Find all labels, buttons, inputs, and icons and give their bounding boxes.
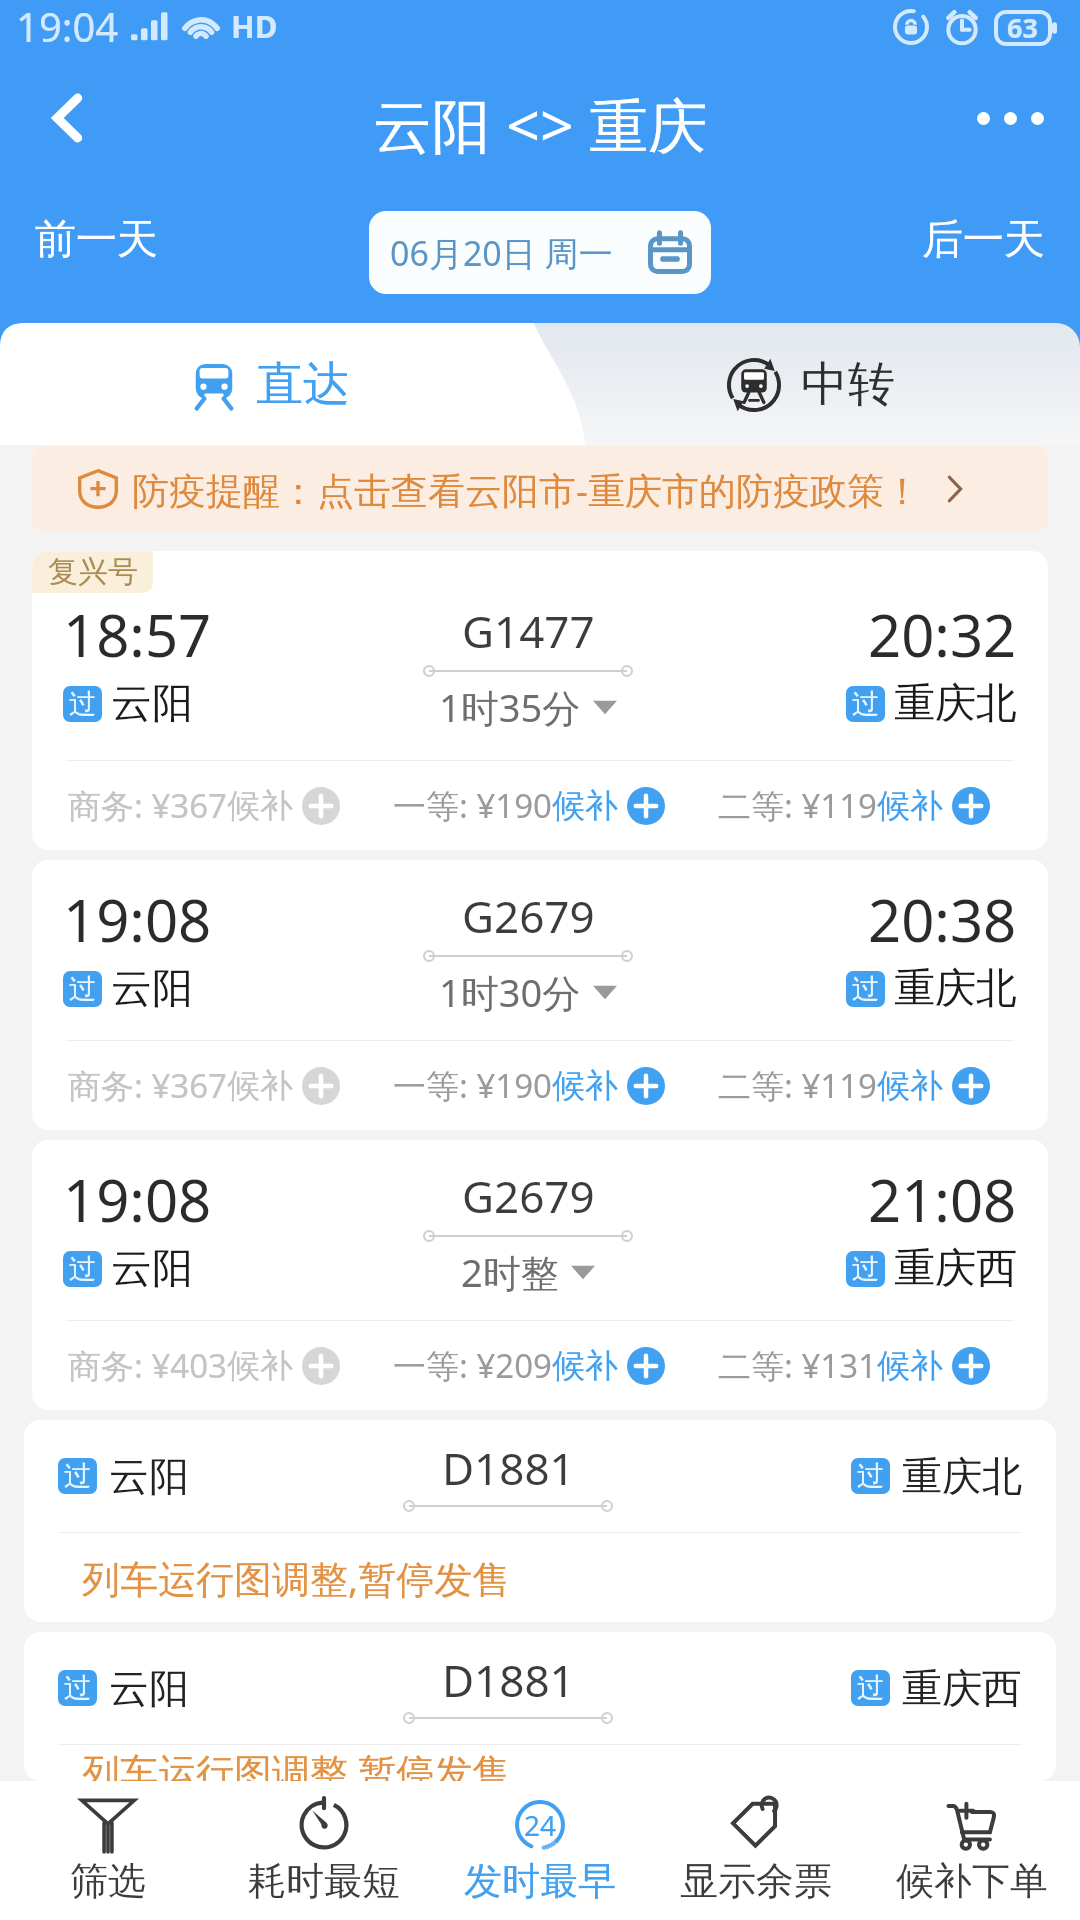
button[interactable]: 二等: ¥131 — [718, 1343, 990, 1388]
staticText: 1时35分 — [439, 681, 581, 733]
button[interactable]: 06月20日 周一 — [369, 211, 711, 294]
staticText: G2679 — [462, 1166, 595, 1226]
staticText: 云阳 <> 重庆 — [373, 84, 708, 165]
staticText: 19:08 — [63, 880, 212, 959]
staticText: 过 — [69, 1252, 96, 1286]
staticText: 重庆北 — [894, 963, 1017, 1015]
staticText: 过 — [852, 972, 879, 1006]
staticText: 前一天 — [35, 214, 158, 266]
staticText: 06月20日 周一 — [390, 230, 613, 276]
staticText: 24 — [524, 1806, 557, 1844]
button[interactable]: 显示余票 — [648, 1781, 864, 1920]
button[interactable]: 前一天 — [0, 200, 186, 280]
staticText: 过 — [852, 1252, 879, 1286]
staticText: 过 — [64, 1671, 91, 1705]
button[interactable]: 19:08 — [32, 1140, 1048, 1410]
staticText: D1881 — [442, 1438, 575, 1498]
staticText: 过 — [69, 972, 96, 1006]
button[interactable]: 商务: ¥403 — [68, 1343, 340, 1388]
staticText: 候补 — [877, 1345, 943, 1387]
staticText: 1时30分 — [439, 966, 581, 1018]
button[interactable]: 中转 — [540, 323, 1080, 445]
button[interactable]: 一等: ¥190 — [393, 1063, 665, 1108]
staticText: 候补 — [552, 1345, 618, 1387]
button[interactable]: 一等: ¥190 — [393, 783, 665, 828]
button[interactable]: 耗时最短 — [216, 1781, 432, 1920]
staticText: 列车运行图调整,暂停发售 — [82, 1745, 511, 1781]
staticText: 20:38 — [868, 880, 1017, 959]
button[interactable]: 直达 — [0, 323, 540, 445]
staticText: 显示余票 — [680, 1857, 832, 1905]
staticText: HD — [231, 5, 278, 47]
staticText: 二等: ¥119 — [718, 783, 877, 828]
staticText: D1881 — [442, 1650, 575, 1710]
button[interactable]: 后一天 — [894, 200, 1080, 280]
staticText: 2时整 — [461, 1246, 559, 1298]
button[interactable]: 商务: ¥367 — [68, 1063, 340, 1108]
button[interactable]: 24 — [432, 1781, 648, 1920]
staticText: 候补 — [227, 1065, 293, 1107]
staticText: 18:57 — [63, 595, 212, 674]
staticText: 一等: ¥190 — [393, 1063, 552, 1108]
staticText: 云阳 — [111, 963, 193, 1015]
staticText: 过 — [69, 687, 96, 721]
staticText: 后一天 — [922, 214, 1045, 266]
button[interactable]: 过 — [24, 1420, 1056, 1622]
staticText: 复兴号 — [48, 553, 138, 591]
staticText: 候补 — [227, 785, 293, 827]
staticText: 19:08 — [63, 1160, 212, 1239]
button[interactable]: 商务: ¥367 — [68, 783, 340, 828]
staticText: 耗时最短 — [248, 1857, 400, 1905]
staticText: 候补 — [227, 1345, 293, 1387]
staticText: 商务: ¥403 — [68, 1343, 227, 1388]
staticText: 重庆西 — [894, 1243, 1017, 1295]
staticText: 商务: ¥367 — [68, 1063, 227, 1108]
staticText: 过 — [852, 687, 879, 721]
staticText: 防疫提醒：点击查看云阳市-重庆市的防疫政策！ — [132, 464, 921, 515]
staticText: 云阳 — [109, 1451, 189, 1501]
staticText: 云阳 — [111, 1243, 193, 1295]
staticText: 21:08 — [868, 1160, 1017, 1239]
staticText: 过 — [64, 1459, 91, 1493]
staticText: 筛选 — [70, 1857, 146, 1905]
staticText: 中转 — [801, 355, 895, 414]
staticText: 20:32 — [868, 595, 1017, 674]
staticText: 列车运行图调整,暂停发售 — [82, 1552, 511, 1604]
staticText: 过 — [857, 1671, 884, 1705]
staticText: 二等: ¥131 — [718, 1343, 877, 1388]
staticText: 候补 — [877, 1065, 943, 1107]
button[interactable]: 复兴号 — [32, 551, 1048, 850]
staticText: 63 — [1007, 9, 1038, 46]
staticText: G2679 — [462, 886, 595, 946]
staticText: 云阳 — [111, 678, 193, 730]
staticText: 候补 — [877, 785, 943, 827]
staticText: 一等: ¥209 — [393, 1343, 552, 1388]
staticText: 商务: ¥367 — [68, 783, 227, 828]
staticText: 直达 — [256, 355, 350, 414]
staticText: G1477 — [462, 601, 595, 661]
button[interactable]: Back — [20, 70, 116, 166]
button[interactable]: 19:08 — [32, 860, 1048, 1130]
staticText: 过 — [857, 1459, 884, 1493]
staticText: 二等: ¥119 — [718, 1063, 877, 1108]
staticText: 19:04 — [16, 0, 119, 53]
button[interactable]: 二等: ¥119 — [718, 1063, 990, 1108]
button[interactable]: 过 — [24, 1632, 1056, 1781]
staticText: 重庆北 — [894, 678, 1017, 730]
staticText: 候补 — [552, 1065, 618, 1107]
staticText: 发时最早 — [464, 1857, 616, 1905]
button[interactable]: 候补下单 — [864, 1781, 1080, 1920]
staticText: 候补 — [552, 785, 618, 827]
staticText: 重庆北 — [902, 1451, 1022, 1501]
staticText: 重庆西 — [902, 1663, 1022, 1713]
button[interactable]: 筛选 — [0, 1781, 216, 1920]
button[interactable]: 一等: ¥209 — [393, 1343, 665, 1388]
staticText: 一等: ¥190 — [393, 783, 552, 828]
button[interactable]: More options — [960, 68, 1060, 168]
button[interactable]: 防疫提醒：点击查看云阳市-重庆市的防疫政策！ — [32, 446, 1048, 532]
staticText: 候补下单 — [896, 1857, 1048, 1905]
button[interactable]: 二等: ¥119 — [718, 783, 990, 828]
staticText: 云阳 — [109, 1663, 189, 1713]
